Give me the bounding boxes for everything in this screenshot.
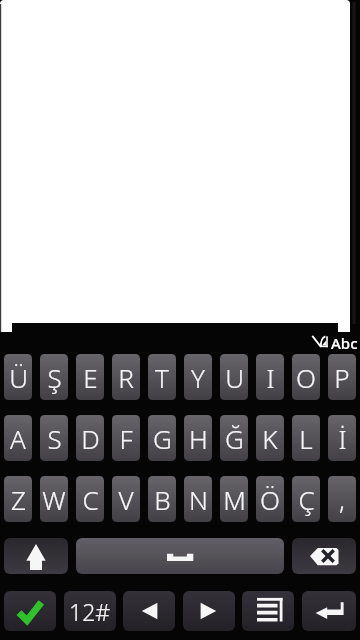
staticText: A	[10, 421, 26, 456]
staticText: H	[189, 421, 208, 456]
button[interactable]: Y	[184, 354, 212, 400]
button[interactable]: Shift	[4, 538, 68, 574]
staticText: Ğ	[225, 421, 244, 456]
staticText: G	[153, 421, 172, 456]
staticText: Ö	[260, 482, 280, 517]
button[interactable]: Input options	[242, 591, 294, 631]
button[interactable]: G	[148, 415, 176, 461]
staticText: Y	[191, 360, 205, 395]
staticText: M	[223, 482, 246, 517]
button[interactable]: Z	[4, 476, 32, 522]
staticText: F	[119, 421, 133, 456]
staticText: S	[47, 421, 62, 456]
button[interactable]: Ö	[256, 476, 284, 522]
staticText: K	[262, 421, 278, 456]
staticText: W	[42, 482, 66, 517]
staticText: L	[299, 421, 313, 456]
staticText: T	[155, 360, 169, 395]
staticText: Z	[11, 482, 26, 517]
button[interactable]: T	[148, 354, 176, 400]
staticText: N	[189, 482, 208, 517]
staticText: Abc	[331, 333, 358, 353]
button[interactable]: I	[256, 354, 284, 400]
staticText: R	[118, 360, 134, 395]
staticText: P	[334, 360, 350, 395]
staticText: Ç	[298, 482, 315, 517]
button[interactable]: İ	[328, 415, 356, 461]
button[interactable]: Ğ	[220, 415, 248, 461]
button[interactable]: K	[256, 415, 284, 461]
staticText: I	[266, 360, 275, 395]
button[interactable]: D	[76, 415, 104, 461]
staticText: 12#	[69, 596, 111, 627]
button[interactable]: Space	[76, 538, 284, 574]
button[interactable]: F	[112, 415, 140, 461]
button[interactable]: E	[76, 354, 104, 400]
button[interactable]: C	[76, 476, 104, 522]
button[interactable]: Enter	[302, 591, 356, 631]
button[interactable]: R	[112, 354, 140, 400]
staticText: Ş	[47, 360, 62, 395]
button[interactable]: U	[220, 354, 248, 400]
button[interactable]: Ş	[40, 354, 68, 400]
button[interactable]: ,	[328, 476, 356, 522]
button[interactable]: N	[184, 476, 212, 522]
button[interactable]: Cursor right	[183, 591, 235, 631]
staticText: İ	[338, 421, 347, 456]
staticText: ,	[339, 482, 345, 517]
staticText: B	[154, 482, 171, 517]
button[interactable]: M	[220, 476, 248, 522]
button[interactable]: Backspace	[292, 538, 356, 574]
button[interactable]: H	[184, 415, 212, 461]
staticText: E	[83, 360, 98, 395]
button[interactable]: Numbers and symbols	[64, 591, 116, 631]
button[interactable]: S	[40, 415, 68, 461]
button[interactable]: B	[148, 476, 176, 522]
button[interactable]: Done	[4, 591, 56, 631]
button[interactable]: L	[292, 415, 320, 461]
button[interactable]: Ç	[292, 476, 320, 522]
button[interactable]: W	[40, 476, 68, 522]
staticText: O	[296, 360, 316, 395]
button[interactable]: A	[4, 415, 32, 461]
staticText: D	[81, 421, 100, 456]
button[interactable]: Ü	[4, 354, 32, 400]
button[interactable]: Cursor left	[123, 591, 175, 631]
staticText: C	[82, 482, 99, 517]
button[interactable]: O	[292, 354, 320, 400]
button[interactable]: V	[112, 476, 140, 522]
staticText: Ü	[9, 360, 28, 395]
staticText: V	[118, 482, 134, 517]
button[interactable]: P	[328, 354, 356, 400]
staticText: U	[225, 360, 244, 395]
